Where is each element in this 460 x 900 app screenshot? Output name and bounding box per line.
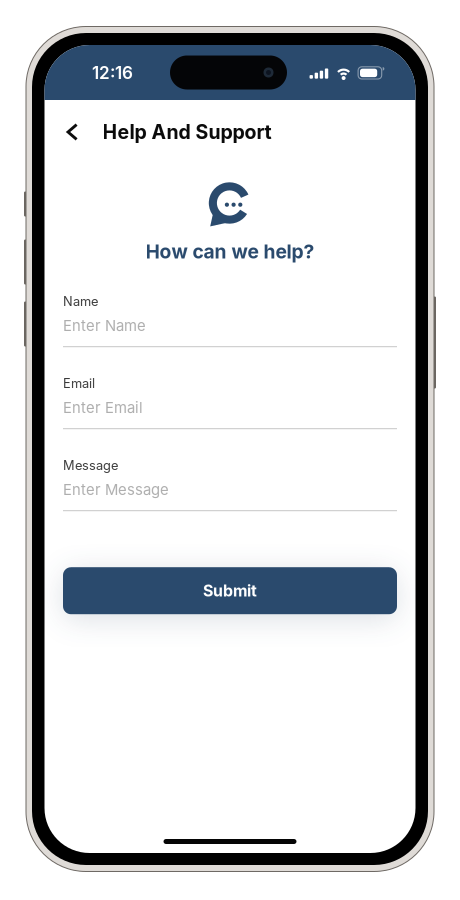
staticText: Enter Name [63,317,146,335]
staticText: Email [63,375,95,391]
staticText: Help And Support [103,120,272,144]
staticText: Name [63,293,98,309]
button[interactable]: Back [56,113,88,151]
staticText: Message [63,457,118,473]
button[interactable]: Submit [63,567,397,614]
staticText: Enter Message [63,481,169,499]
staticText: Submit [203,581,257,600]
staticText: How can we help? [145,240,314,263]
staticText: Enter Email [63,399,143,417]
staticText: 12:16 [92,63,133,83]
